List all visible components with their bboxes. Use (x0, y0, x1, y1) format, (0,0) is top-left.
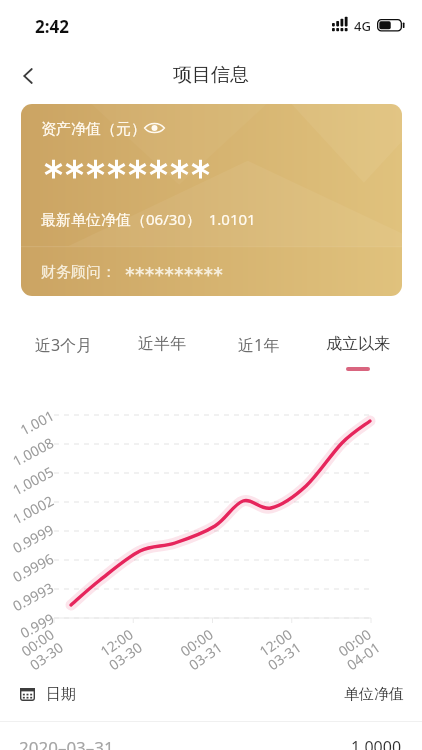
staticText: 近3个月 (35, 334, 93, 356)
staticText: 12:00 03-31 (254, 625, 305, 674)
staticText: 1.0005 (9, 462, 57, 499)
staticText: 00:00 03-30 (16, 625, 67, 674)
staticText: 0.999 (17, 609, 57, 642)
staticText: 成立以来 (326, 334, 390, 354)
button[interactable]: 近1年 (214, 322, 304, 374)
staticText: 0.9999 (9, 520, 57, 557)
staticText: 00:00 03-31 (175, 625, 226, 674)
staticText: 近半年 (138, 334, 186, 354)
staticText: 财务顾问： (41, 263, 116, 282)
button[interactable]: 资产净值（元） (21, 104, 402, 296)
staticText: 2020–03–31 (19, 736, 114, 750)
button[interactable]: 近半年 (117, 322, 207, 374)
staticText: 近1年 (238, 334, 280, 356)
staticText: 1.0000 (351, 736, 402, 750)
button[interactable]: 2020–03–31 (0, 736, 422, 750)
staticText: 日期 (46, 685, 76, 704)
button[interactable]: 近3个月 (19, 322, 109, 374)
staticText: 单位净值 (344, 685, 404, 704)
button[interactable]: 日期 (0, 676, 422, 712)
staticText: 0.9993 (9, 578, 57, 615)
staticText: 资产净值（元） (41, 120, 146, 139)
staticText: 1.001 (17, 406, 57, 439)
staticText: 00:00 04-01 (333, 625, 384, 674)
staticText: 4G (354, 17, 371, 35)
staticText: 12:00 03-30 (95, 625, 146, 674)
button[interactable]: 成立以来 (313, 322, 403, 374)
button[interactable]: Back (4, 52, 52, 100)
staticText: 1.0002 (9, 491, 57, 528)
staticText: 项目信息 (173, 63, 249, 87)
staticText: 1.0008 (9, 433, 57, 470)
staticText: 2:42 (35, 15, 69, 38)
staticText: 最新单位净值（06/30） 1.0101 (41, 209, 256, 229)
button[interactable]: Toggle balance visibility (137, 111, 171, 145)
staticText: 0.9996 (9, 549, 57, 586)
